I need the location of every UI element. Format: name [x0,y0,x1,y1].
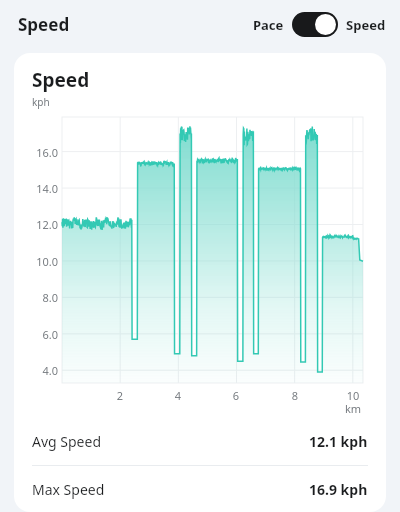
button[interactable]: Switch between pace and speed [292,12,338,37]
staticText: 16.0 [20,145,58,160]
button[interactable]: Max Speed [14,466,386,512]
button[interactable]: Avg Speed [14,417,386,465]
staticText: 14.0 [20,181,58,196]
staticText: km [339,401,367,416]
staticText: 10.0 [20,254,58,269]
staticText: kph [32,95,50,109]
staticText: Speed [18,13,70,36]
staticText: Avg Speed [32,432,102,451]
staticText: 2 [106,388,134,403]
staticText: 6.0 [20,327,58,342]
staticText: 16.9 kph [309,480,368,499]
staticText: Speed [32,67,90,93]
staticText: 12.1 kph [309,432,368,451]
staticText: 4.0 [20,363,58,378]
staticText: 8.0 [20,290,58,305]
staticText: Max Speed [32,480,105,499]
staticText: 4 [164,388,192,403]
staticText: 12.0 [20,217,58,232]
button[interactable]: Pace [253,16,284,34]
staticText: 8 [281,388,309,403]
staticText: 10 [339,388,367,403]
button[interactable]: Speed [346,16,386,34]
staticText: 6 [222,388,250,403]
